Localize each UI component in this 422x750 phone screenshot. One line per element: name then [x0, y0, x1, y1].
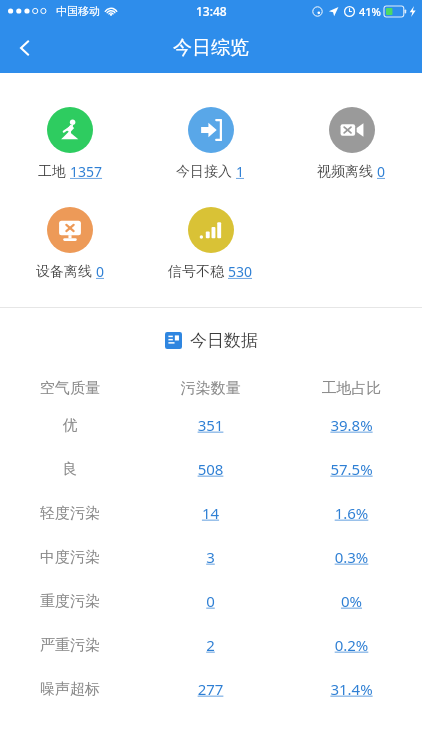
- staticText: 0.2%: [281, 635, 422, 655]
- staticText: 3: [140, 547, 281, 567]
- staticText: 空气质量: [0, 379, 140, 398]
- staticText: 严重污染: [0, 636, 140, 655]
- staticText: 1.6%: [281, 503, 422, 523]
- staticText: 41%: [359, 4, 381, 19]
- staticText: 工地: [38, 163, 66, 181]
- staticText: 277: [140, 679, 281, 699]
- button[interactable]: 今日接入: [140, 107, 281, 181]
- button[interactable]: 设备离线: [0, 207, 140, 281]
- staticText: 14: [140, 503, 281, 523]
- button[interactable]: 信号不稳: [140, 207, 281, 281]
- staticText: 0: [377, 162, 386, 181]
- staticText: 良: [0, 460, 140, 479]
- staticText: 轻度污染: [0, 504, 140, 523]
- staticText: 今日综览: [173, 36, 249, 60]
- staticText: 中国移动: [56, 4, 100, 18]
- button[interactable]: 轻度污染: [0, 491, 422, 535]
- staticText: 优: [0, 416, 140, 435]
- staticText: 351: [140, 415, 281, 435]
- staticText: 508: [140, 459, 281, 479]
- staticText: 设备离线: [36, 263, 92, 281]
- button[interactable]: 优: [0, 403, 422, 447]
- staticText: 530: [228, 262, 253, 281]
- button[interactable]: 工地: [0, 107, 140, 181]
- staticText: 0: [96, 262, 105, 281]
- staticText: 1: [236, 162, 245, 181]
- staticText: 1357: [70, 162, 103, 181]
- staticText: 0.3%: [281, 547, 422, 567]
- staticText: 2: [140, 635, 281, 655]
- staticText: 视频离线: [317, 163, 373, 181]
- staticText: 13:48: [196, 3, 227, 19]
- staticText: 污染数量: [140, 379, 281, 398]
- button[interactable]: 视频离线: [281, 107, 422, 181]
- staticText: 重度污染: [0, 592, 140, 611]
- button[interactable]: 噪声超标: [0, 667, 422, 711]
- button[interactable]: 严重污染: [0, 623, 422, 667]
- staticText: 0%: [281, 591, 422, 611]
- staticText: 噪声超标: [0, 680, 140, 699]
- button[interactable]: 良: [0, 447, 422, 491]
- staticText: 信号不稳: [168, 263, 224, 281]
- staticText: 今日接入: [176, 163, 232, 181]
- staticText: 工地占比: [281, 379, 422, 398]
- staticText: 中度污染: [0, 548, 140, 567]
- staticText: 今日数据: [190, 330, 258, 351]
- staticText: 31.4%: [281, 679, 422, 699]
- button[interactable]: 重度污染: [0, 579, 422, 623]
- staticText: 0: [140, 591, 281, 611]
- button[interactable]: 中度污染: [0, 535, 422, 579]
- staticText: 39.8%: [281, 415, 422, 435]
- button[interactable]: Back: [0, 23, 50, 73]
- staticText: 57.5%: [281, 459, 422, 479]
